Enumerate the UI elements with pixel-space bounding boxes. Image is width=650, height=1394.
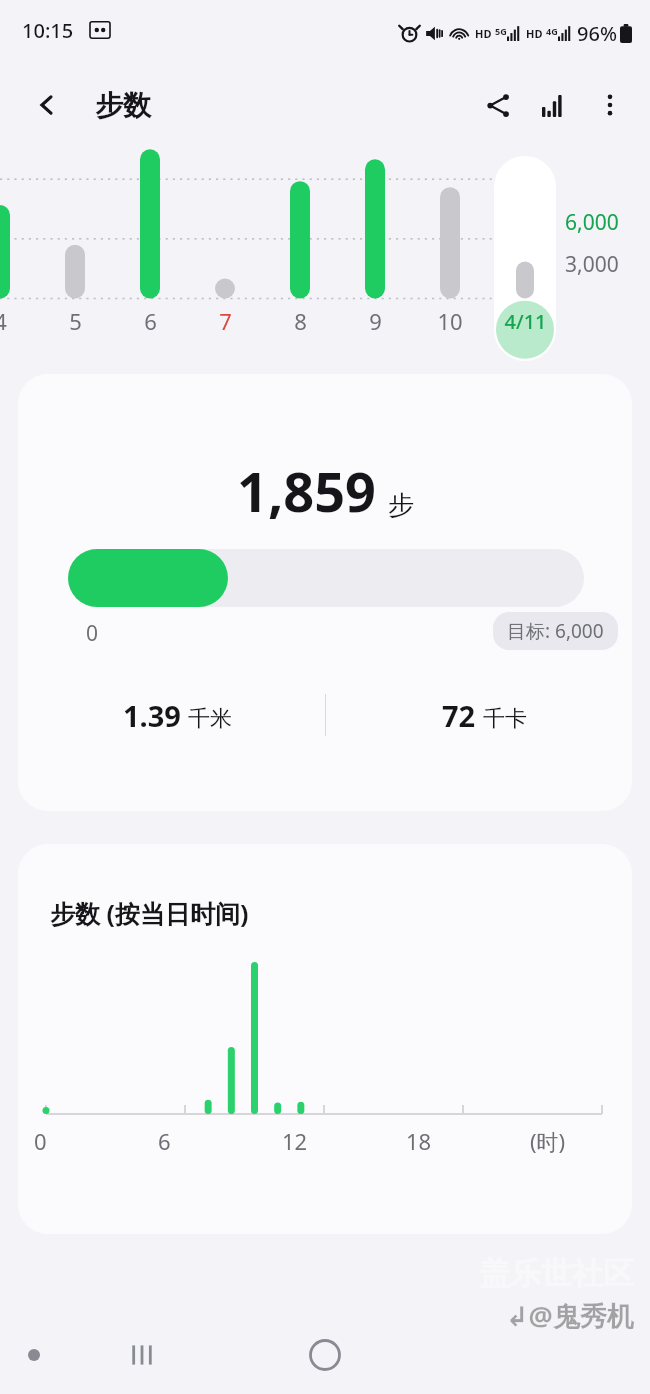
staticText: ↲@鬼秀机: [506, 1297, 634, 1334]
button[interactable]: Back: [18, 76, 76, 134]
staticText: 4/11: [504, 308, 547, 335]
staticText: 4: [0, 306, 7, 336]
staticText: 1.39: [123, 696, 181, 735]
staticText: 72: [442, 696, 476, 735]
button[interactable]: Chart: [526, 77, 582, 133]
staticText: 6: [144, 306, 157, 336]
staticText: 10:15: [22, 17, 74, 44]
staticText: 步数 (按当日时间): [50, 896, 249, 930]
staticText: 7: [219, 306, 232, 336]
button[interactable]: More options: [582, 77, 638, 133]
staticText: 目标: 6,000: [507, 618, 604, 644]
staticText: 1,859: [237, 454, 376, 528]
staticText: 3,000: [565, 250, 619, 279]
staticText: 6: [158, 1126, 171, 1156]
staticText: 10: [437, 306, 463, 336]
staticText: 8: [294, 306, 307, 336]
staticText: 千米: [188, 705, 232, 733]
staticText: 5G: [495, 25, 507, 37]
staticText: 0: [86, 619, 99, 648]
staticText: 步: [388, 489, 414, 522]
button[interactable]: 步数 (按当日时间): [18, 844, 632, 1234]
button[interactable]: 1,859: [18, 374, 632, 811]
staticText: 96%: [577, 20, 617, 47]
staticText: 千卡: [483, 705, 527, 733]
staticText: 4G: [546, 25, 558, 37]
staticText: 6,000: [565, 208, 619, 237]
staticText: 18: [406, 1126, 432, 1156]
staticText: HD: [526, 26, 543, 41]
button[interactable]: Recent apps: [105, 1318, 179, 1392]
staticText: 12: [282, 1126, 308, 1156]
other: Recents dot: [28, 1349, 40, 1361]
staticText: HD: [475, 26, 492, 41]
staticText: (时): [530, 1126, 566, 1156]
staticText: 5: [69, 306, 82, 336]
button[interactable]: Home: [288, 1318, 362, 1392]
staticText: 步数: [95, 88, 151, 123]
staticText: 0: [34, 1126, 47, 1156]
button[interactable]: Share: [470, 77, 526, 133]
staticText: 9: [369, 306, 382, 336]
